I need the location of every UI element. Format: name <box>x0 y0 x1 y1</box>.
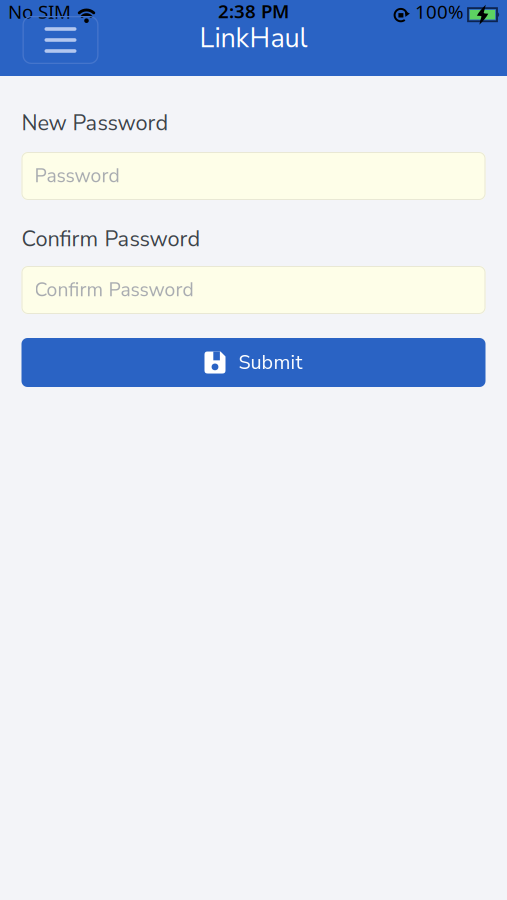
staticText: Confirm Password <box>21 224 200 254</box>
staticText: Confirm Password <box>34 277 193 303</box>
staticText: New Password <box>21 108 168 138</box>
staticText: Submit <box>238 349 302 376</box>
button[interactable]: Menu <box>22 16 98 64</box>
button[interactable]: Submit <box>21 338 485 387</box>
staticText: Password <box>34 163 119 189</box>
staticText: 2:38 PM <box>218 0 289 23</box>
staticText: LinkHaul <box>199 20 307 57</box>
staticText: 100% <box>415 0 464 24</box>
staticText: No SIM <box>8 0 71 24</box>
